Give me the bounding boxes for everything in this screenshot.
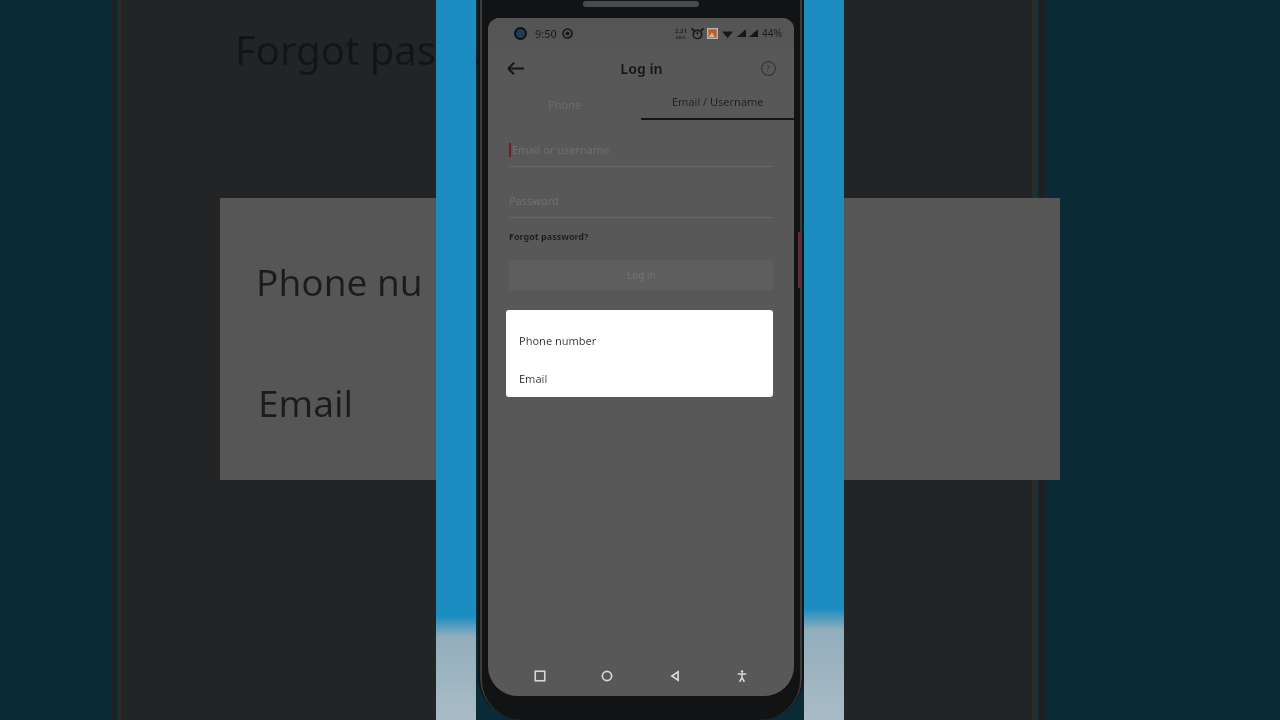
staticText: KB/S [676,35,686,40]
button[interactable]: Back [500,53,530,83]
staticText: Log in [620,59,663,78]
button[interactable]: Forgot password? [509,230,589,242]
button[interactable]: Help [754,54,782,82]
staticText: Phone number [519,333,597,348]
staticText: Forgot passw [235,22,487,76]
staticText: Email [519,371,548,386]
staticText: 2.21 [675,27,687,35]
button[interactable]: Accessibility [727,661,757,691]
staticText: Password [509,193,559,208]
staticText: Email [258,377,354,427]
button[interactable]: Back [660,661,690,691]
button[interactable]: Email / Username [641,88,794,120]
staticText: Email / Username [672,94,764,109]
staticText: ? [766,62,771,74]
staticText: Log in [627,268,656,282]
staticText: Phone [548,97,582,112]
staticText: Email or username [512,142,610,157]
staticText: 44% [762,26,782,40]
button[interactable]: Home [592,661,622,691]
button[interactable]: Recent apps [525,661,555,691]
staticText: Phone nu [256,256,423,306]
staticText: 9:50 [535,26,557,41]
button[interactable]: Phone number [506,326,773,354]
button[interactable]: Email [506,364,773,392]
